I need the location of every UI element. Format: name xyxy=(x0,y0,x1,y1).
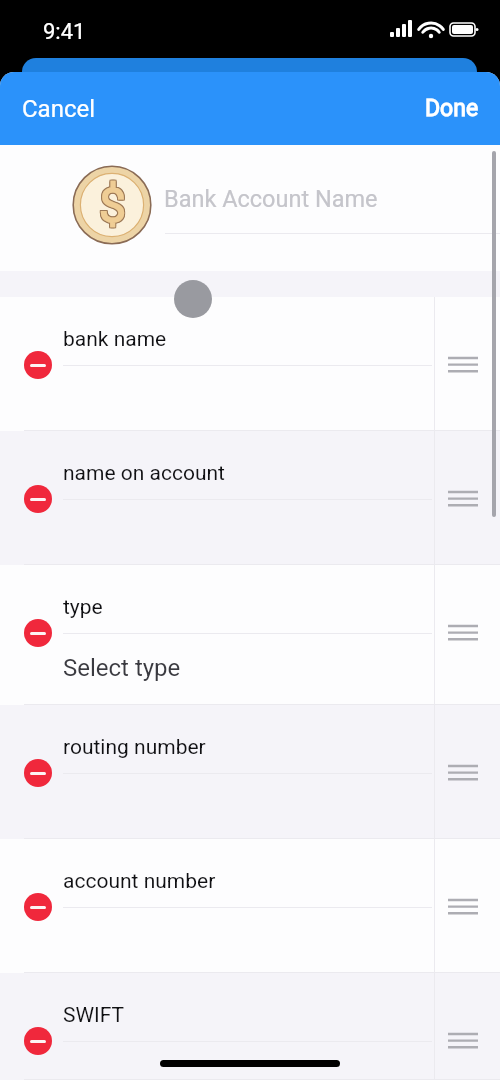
staticText: routing number xyxy=(63,735,206,760)
button[interactable]: Remove type xyxy=(0,565,500,705)
button[interactable]: Reorder SWIFT xyxy=(448,1029,478,1055)
staticText: type xyxy=(63,595,103,620)
button[interactable]: Cancel xyxy=(0,87,118,131)
staticText: $ xyxy=(98,177,125,233)
button[interactable]: Remove name on account xyxy=(0,431,500,565)
staticText: Select type xyxy=(63,654,181,682)
staticText: account number xyxy=(63,869,216,894)
staticText: Done xyxy=(425,95,479,122)
button[interactable]: Remove account number xyxy=(24,893,52,921)
staticText: $ xyxy=(98,178,125,234)
button[interactable]: Remove account number xyxy=(0,839,500,973)
button[interactable]: Remove name on account xyxy=(24,485,52,513)
staticText: $ xyxy=(100,177,127,233)
staticText: $ xyxy=(99,177,126,233)
button[interactable]: Done xyxy=(403,87,500,130)
staticText: Cancel xyxy=(22,95,96,123)
button[interactable]: Reorder type xyxy=(448,621,478,647)
staticText: 9:41 xyxy=(43,19,86,45)
button[interactable]: Remove SWIFT xyxy=(0,973,500,1080)
button[interactable]: Remove SWIFT xyxy=(24,1027,52,1055)
button[interactable]: Reorder routing number xyxy=(448,761,478,787)
staticText: $ xyxy=(99,176,126,232)
staticText: $ xyxy=(100,178,127,234)
staticText: $ xyxy=(99,178,126,234)
button[interactable]: Remove routing number xyxy=(0,705,500,839)
staticText: bank name xyxy=(63,327,167,352)
staticText: $ xyxy=(100,176,127,232)
button[interactable]: Remove bank name xyxy=(0,297,500,431)
button[interactable]: Reorder bank name xyxy=(448,353,478,379)
staticText: $ xyxy=(98,176,125,232)
staticText: name on account xyxy=(63,461,225,486)
button[interactable]: Remove bank name xyxy=(24,351,52,379)
button[interactable]: Reorder name on account xyxy=(448,487,478,513)
button[interactable]: Reorder account number xyxy=(448,895,478,921)
staticText: Bank Account Name xyxy=(164,185,378,213)
button[interactable]: Remove type xyxy=(24,619,52,647)
button[interactable]: Remove routing number xyxy=(24,759,52,787)
staticText: SWIFT xyxy=(63,1003,125,1028)
